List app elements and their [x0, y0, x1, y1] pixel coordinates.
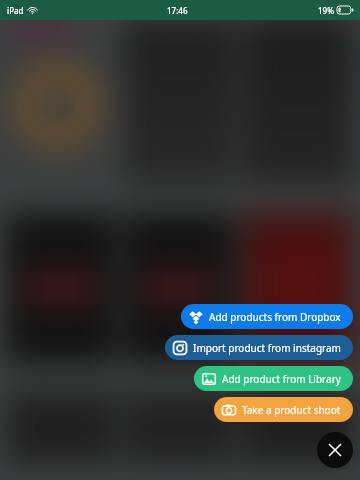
button[interactable]: Add products from Dropbox	[181, 304, 353, 329]
staticText: Take a product shoot	[242, 403, 341, 417]
staticText: Import product from instagram	[193, 341, 341, 355]
staticText: Add products from Dropbox	[209, 310, 341, 324]
button[interactable]: Add product from Library	[194, 366, 353, 391]
button[interactable]: Import product from instagram	[165, 335, 353, 360]
staticText: iPad	[7, 5, 24, 16]
button[interactable]: Close	[317, 432, 353, 468]
staticText: Add product from Library	[222, 372, 341, 386]
button[interactable]: Take a product shoot	[214, 397, 353, 422]
staticText: 19%	[318, 5, 334, 16]
staticText: 17:46	[167, 5, 188, 16]
